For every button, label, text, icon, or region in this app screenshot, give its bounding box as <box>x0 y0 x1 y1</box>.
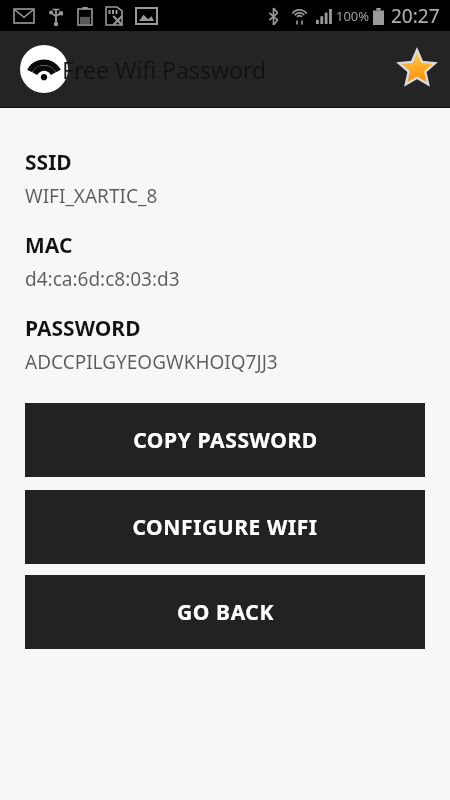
button[interactable]: COPY PASSWORD <box>25 403 425 477</box>
staticText: MAC <box>25 231 73 260</box>
staticText: WIFI_XARTIC_8 <box>25 183 158 209</box>
staticText: Free Wifi Password <box>62 54 267 85</box>
button[interactable]: GO BACK <box>25 575 425 649</box>
staticText: SSID <box>25 148 72 177</box>
staticText: d4:ca:6d:c8:03:d3 <box>25 266 180 292</box>
staticText: CONFIGURE WIFI <box>132 513 318 542</box>
staticText: 20:27 <box>391 3 440 29</box>
staticText: ADCCPILGYEOGWKHOIQ7JJ3 <box>25 349 278 375</box>
staticText: PASSWORD <box>25 314 141 343</box>
button[interactable]: CONFIGURE WIFI <box>25 490 425 564</box>
button[interactable]: Favorite <box>396 48 438 90</box>
staticText: COPY PASSWORD <box>133 426 318 455</box>
staticText: 100% <box>336 7 370 25</box>
staticText: GO BACK <box>177 598 274 627</box>
